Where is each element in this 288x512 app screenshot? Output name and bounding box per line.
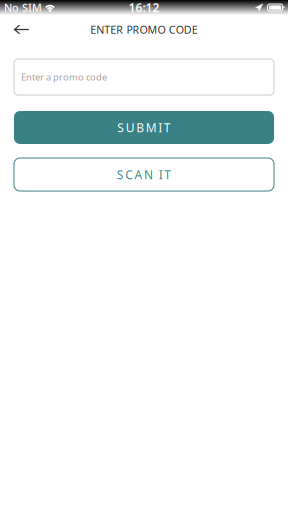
- staticText: 16:12: [128, 0, 159, 15]
- button[interactable]: SUBMIT: [14, 111, 274, 144]
- button[interactable]: Enter a promo code: [14, 59, 274, 95]
- button[interactable]: Back: [0, 15, 43, 44]
- staticText: SCAN IT: [112, 166, 176, 182]
- staticText: Enter a promo code: [21, 71, 107, 83]
- button[interactable]: SCAN IT: [14, 158, 274, 191]
- staticText: ENTER PROMO CODE: [87, 22, 201, 37]
- staticText: SUBMIT: [113, 119, 175, 135]
- staticText: No SIM: [4, 0, 42, 15]
